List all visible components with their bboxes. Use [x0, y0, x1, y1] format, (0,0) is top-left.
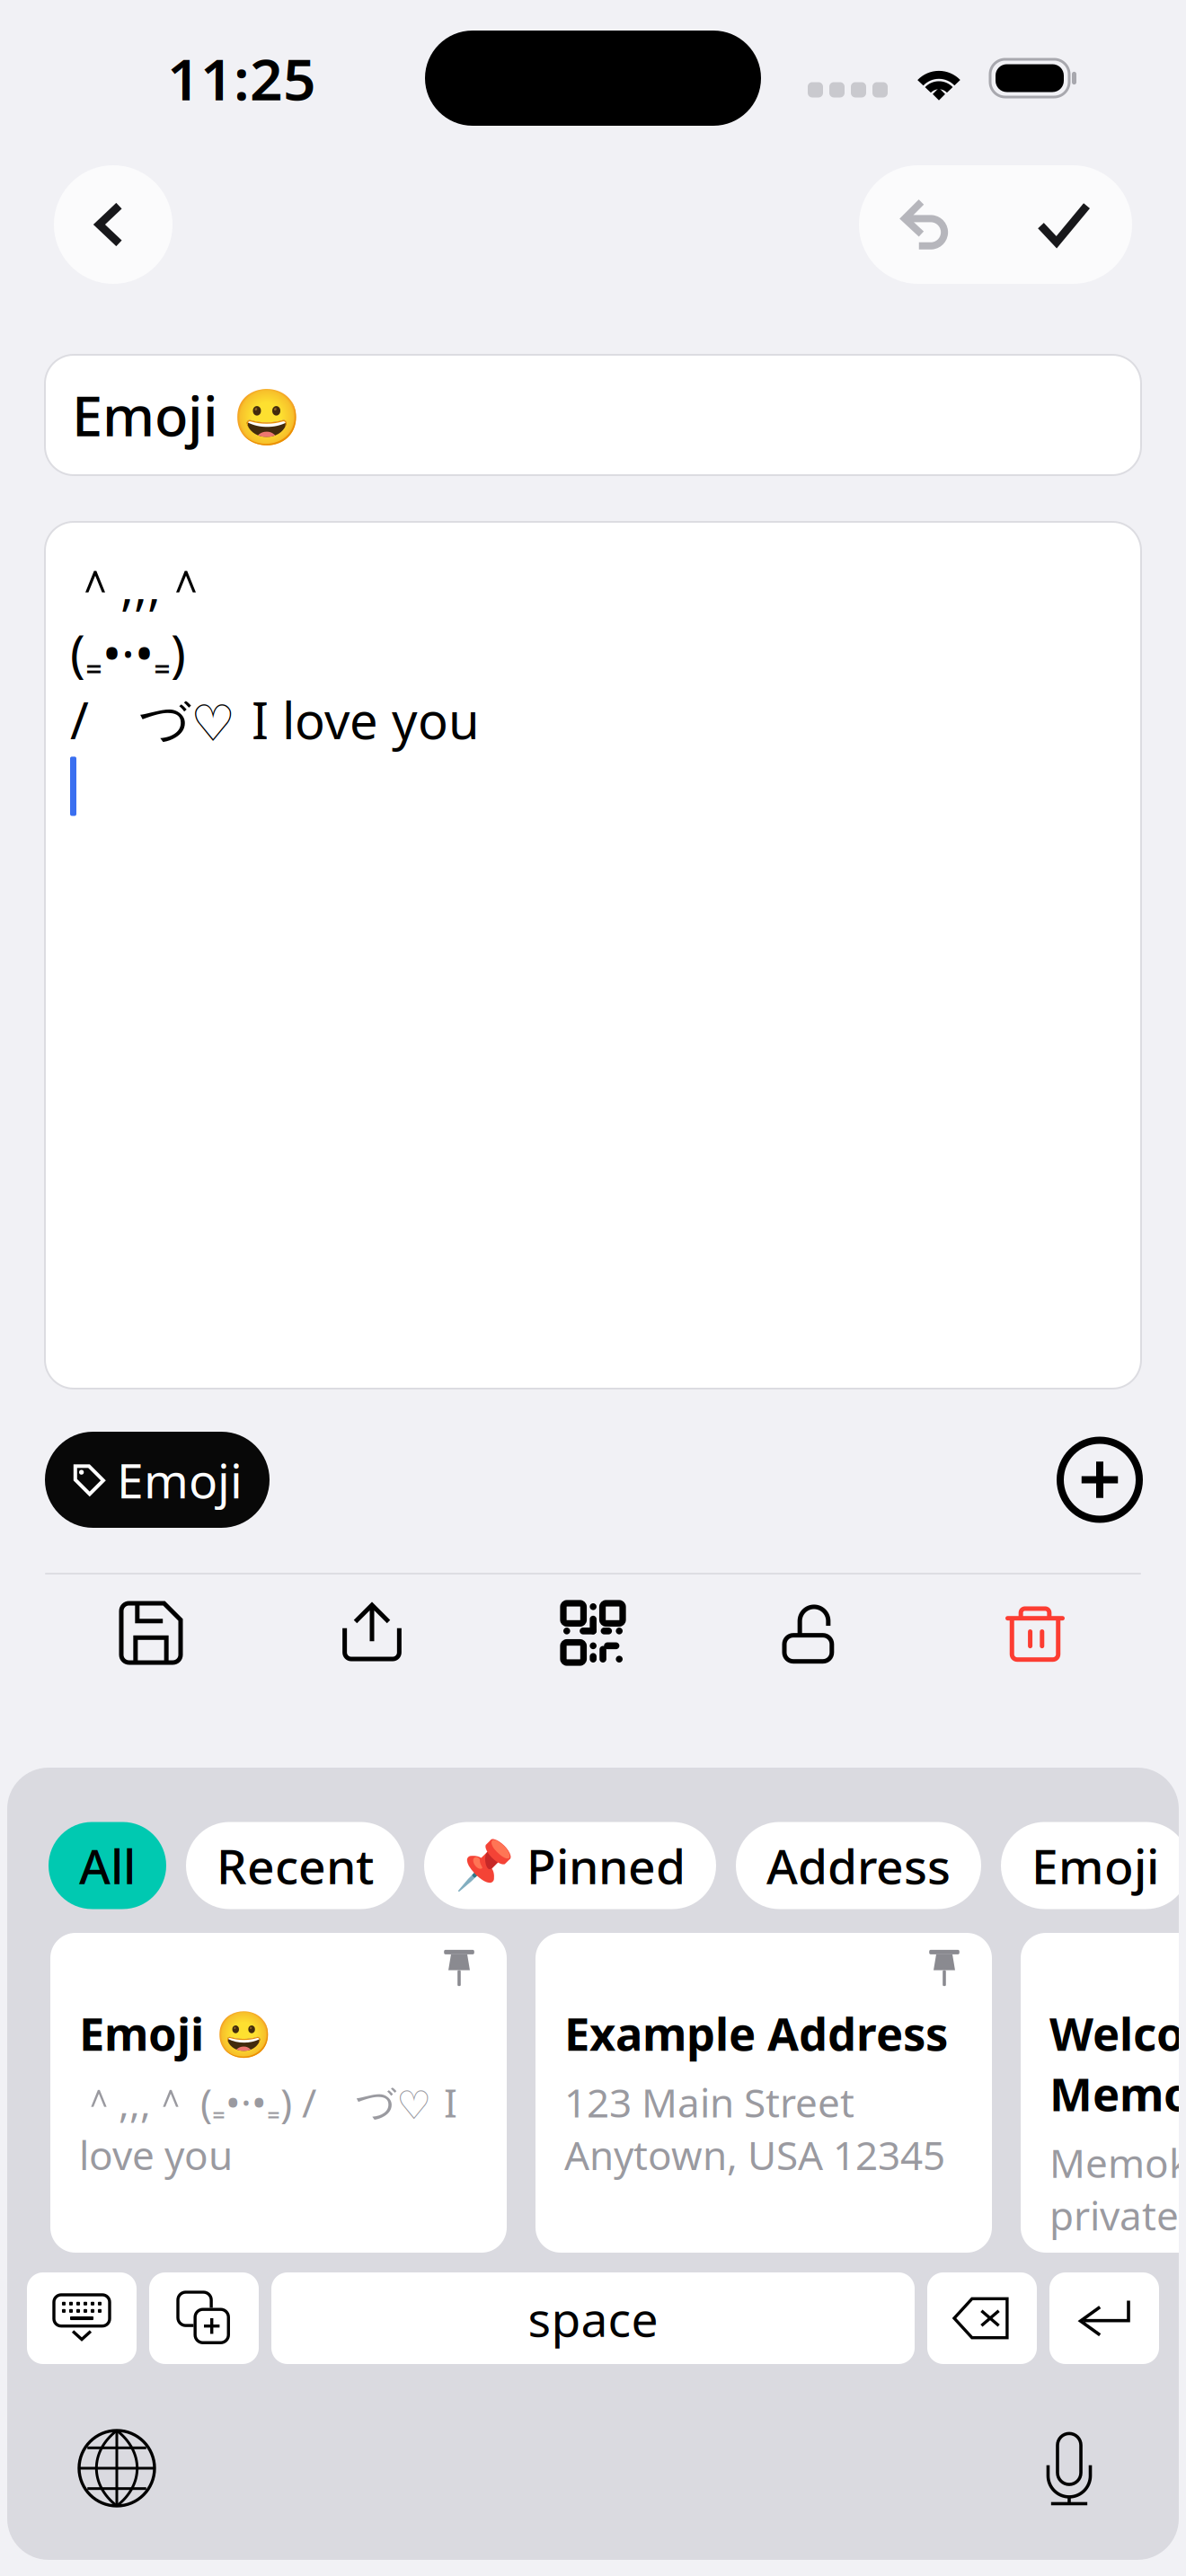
button[interactable]: Delete — [972, 1584, 1098, 1682]
button[interactable]: Emoji — [1001, 1822, 1186, 1909]
staticText: Welcome to Memokit! — [1049, 2003, 1186, 2124]
button[interactable]: Save — [88, 1584, 214, 1682]
button[interactable]: New item — [149, 2272, 259, 2364]
button[interactable]: Delete — [927, 2272, 1037, 2364]
button[interactable]: Switch keyboard — [63, 2414, 171, 2522]
button[interactable]: Emoji 😀 — [50, 1933, 507, 2253]
staticText: Emoji 😀 — [79, 2003, 272, 2063]
staticText: / づ♡ I love you — [70, 686, 480, 753]
staticText: Emoji — [117, 1448, 243, 1512]
staticText: ＾,,,＾ — [70, 552, 211, 619]
staticText: Emoji — [1031, 1834, 1159, 1897]
staticText: All — [79, 1834, 136, 1897]
button[interactable]: Add tag — [1053, 1433, 1146, 1526]
button[interactable]: Undo — [859, 165, 996, 284]
button[interactable]: Emoji — [45, 1432, 270, 1528]
button[interactable]: Lock — [751, 1584, 877, 1682]
button[interactable]: Dictate — [1015, 2414, 1123, 2522]
button[interactable]: All — [49, 1822, 166, 1909]
button[interactable]: space — [271, 2272, 915, 2364]
staticText: Example Address — [564, 2003, 948, 2063]
staticText: Emoji 😀 — [72, 378, 301, 452]
button[interactable]: Welcome to Memokit! — [1021, 1933, 1186, 2253]
button[interactable]: Example Address — [535, 1933, 992, 2253]
staticText: Memokit is a secure, private place for a… — [1049, 2136, 1186, 2294]
staticText: ＾,,,＾ (₌•·•₌) / づ♡ I love you — [79, 2076, 457, 2181]
staticText: 11:25 — [167, 40, 316, 116]
button[interactable]: Recent — [186, 1822, 404, 1909]
staticText: Address — [766, 1834, 951, 1897]
staticText: space — [528, 2286, 658, 2350]
button[interactable]: Hide keyboard — [27, 2272, 137, 2364]
staticText: Recent — [217, 1834, 374, 1897]
staticText: 📌 — [455, 1838, 514, 1893]
button[interactable]: 📌 — [424, 1822, 716, 1909]
staticText: Pinned — [527, 1834, 686, 1897]
staticText: 123 Main Street Anytown, USA 12345 — [564, 2076, 945, 2181]
button[interactable]: Save note — [996, 165, 1132, 284]
button[interactable]: Share — [309, 1584, 435, 1682]
button[interactable]: Return — [1049, 2272, 1159, 2364]
button[interactable]: Address — [736, 1822, 981, 1909]
button[interactable]: Back — [54, 165, 173, 284]
button[interactable]: QR code — [530, 1584, 656, 1682]
staticText: (₌•·•₌) — [70, 619, 186, 686]
